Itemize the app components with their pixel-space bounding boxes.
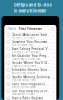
staticText: Get tips and to-dos <box>13 2 51 7</box>
staticText: Set Goals for Your Pregnancy <box>11 54 50 58</box>
staticText: Check Medication Safety <box>11 33 50 37</box>
button[interactable]: Decide Where You'll Give Birth <box>4 61 56 68</box>
staticText: Start Taking Prenatal Vitamins <box>11 47 50 51</box>
button[interactable]: Complete Your Recommended <box>4 40 56 47</box>
staticText: First-Trimester Tests <box>11 44 33 46</box>
button[interactable]: Start a Baby Registry <box>4 96 56 100</box>
staticText: Not sure if it's safe? <box>11 37 34 39</box>
button[interactable]: Check Medication Safety <box>4 33 56 40</box>
staticText: When and how to share <box>11 93 34 96</box>
staticText: Schedule Genetic Screening <box>11 68 50 72</box>
staticText: Plan for the costs ahead <box>11 86 35 89</box>
button[interactable]: Handle Morning Sickness <box>4 75 56 82</box>
staticText: Complete Your Recommended <box>11 40 50 44</box>
staticText: ‹ Back <box>6 27 16 30</box>
staticText: Handle Morning Sickness <box>11 75 49 79</box>
button[interactable]: Tally Your Pregnancy Budget <box>4 82 56 89</box>
staticText: Decide Where You'll Give Birth <box>11 61 50 65</box>
staticText: Tell Your Boss You're Pregnant <box>11 89 50 93</box>
button[interactable]: Start Taking Prenatal Vitamins <box>4 47 56 54</box>
button[interactable]: Profile <box>51 27 56 30</box>
button[interactable]: ‹ Back <box>4 26 16 31</box>
staticText: Tally Your Pregnancy Budget <box>11 82 50 86</box>
button[interactable]: Tell Your Boss You're Pregnant <box>4 89 56 96</box>
button[interactable]: Set Goals for Your Pregnancy <box>4 54 56 61</box>
staticText: Healthy habits to start now <box>11 58 40 60</box>
staticText: 400 mcg of folic acid daily <box>11 51 40 53</box>
staticText: in every trimester <box>13 8 46 13</box>
staticText: Start a Baby Registry <box>11 97 43 100</box>
staticText: Tips that actually help <box>11 79 35 82</box>
staticText: Talk with your provider <box>11 72 35 75</box>
staticText: Hospital or birth center <box>11 65 36 67</box>
button[interactable]: Schedule Genetic Screening <box>4 68 56 75</box>
staticText: First Trimester <box>19 27 42 31</box>
